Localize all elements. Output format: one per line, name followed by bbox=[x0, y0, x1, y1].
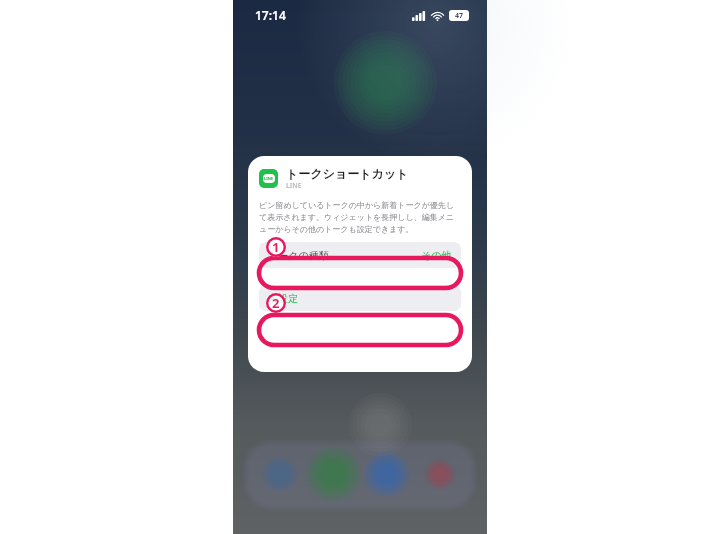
staticText: その他 bbox=[421, 249, 452, 262]
staticText: LINE bbox=[264, 176, 274, 181]
staticText: 1 bbox=[272, 238, 280, 256]
staticText: 17:14 bbox=[255, 7, 286, 23]
button[interactable]: トークの種類 bbox=[259, 242, 461, 268]
button[interactable]: 未設定 bbox=[259, 285, 461, 311]
staticText: 2 bbox=[272, 294, 280, 312]
staticText: LINE bbox=[286, 181, 302, 191]
staticText: トークショートカット bbox=[286, 166, 409, 181]
staticText: 未設定 bbox=[268, 292, 298, 305]
staticText: トークの種類 bbox=[268, 249, 329, 262]
staticText: ピン留めしているトークの中から新着トークが優先して表示されます。ウィジェットを長… bbox=[259, 200, 461, 234]
staticText: 47 bbox=[455, 11, 464, 21]
